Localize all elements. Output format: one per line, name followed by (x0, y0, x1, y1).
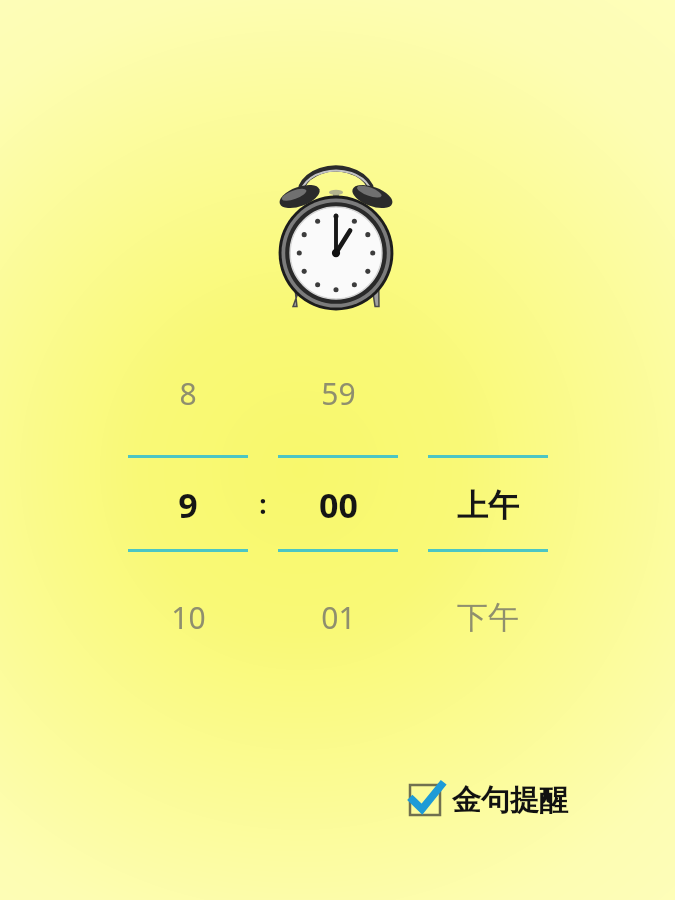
staticText: 金句提醒 (452, 782, 568, 819)
button[interactable]: 下午 (418, 587, 558, 647)
button[interactable]: 01 (268, 587, 408, 647)
staticText: 01 (321, 597, 356, 638)
staticText: : (259, 486, 267, 521)
staticText: 9 (178, 482, 198, 528)
button[interactable]: 10 (118, 587, 258, 647)
staticText: 00 (319, 482, 358, 528)
staticText: 10 (171, 597, 206, 638)
button[interactable]: 00 (268, 475, 408, 535)
button[interactable]: 59 (268, 363, 408, 423)
button[interactable]: : (193, 473, 333, 533)
button[interactable]: 上午 (418, 475, 558, 535)
staticText: 8 (179, 373, 197, 414)
staticText: 上午 (457, 486, 519, 525)
staticText: 下午 (457, 598, 519, 637)
button[interactable]: 9 (118, 475, 258, 535)
button[interactable]: 8 (118, 363, 258, 423)
button[interactable]: 金句提醒 (404, 779, 570, 821)
staticText: 59 (321, 373, 356, 414)
other: Alarm clock (266, 160, 406, 315)
